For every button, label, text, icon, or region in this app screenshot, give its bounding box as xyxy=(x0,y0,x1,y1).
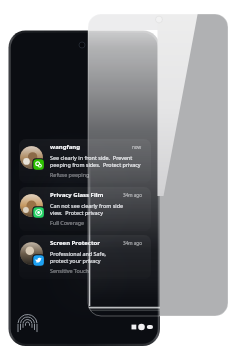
button[interactable]: Privacy Glass Film xyxy=(19,187,151,231)
staticText: See clearly in front side. Prevent peepi… xyxy=(50,154,141,168)
staticText: Privacy Glass Film xyxy=(50,191,104,199)
staticText: Refuse peeping xyxy=(50,171,90,178)
button[interactable]: Screen Protector xyxy=(19,235,151,279)
button[interactable]: Privacy screen protector product photo xyxy=(0,0,240,360)
staticText: Sensitive Touch xyxy=(50,267,89,274)
staticText: 34m ago xyxy=(123,240,142,246)
staticText: Professional and Safe, protect your priv… xyxy=(50,250,106,264)
button[interactable]: wangfang xyxy=(19,139,151,183)
staticText: wangfang xyxy=(50,143,81,151)
staticText: Can not see clearly from side view. Prot… xyxy=(50,202,123,216)
staticText: Screen Protector xyxy=(50,239,100,247)
staticText: now xyxy=(132,144,142,150)
staticText: Full Coverage xyxy=(50,219,85,226)
staticText: 34m ago xyxy=(123,192,142,198)
